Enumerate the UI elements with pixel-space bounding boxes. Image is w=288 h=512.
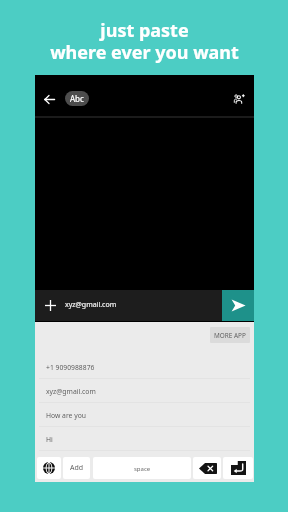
button[interactable]: Language <box>37 457 61 479</box>
button[interactable]: Add attachment <box>41 296 59 314</box>
staticText: Abc <box>70 93 84 104</box>
button[interactable]: Send <box>222 290 254 321</box>
button[interactable]: xyz@gmail.com <box>35 379 254 403</box>
staticText: xyz@gmail.com <box>65 300 117 310</box>
button[interactable]: Add <box>63 457 90 479</box>
staticText: MORE APP <box>214 331 246 340</box>
button[interactable]: Hi <box>35 427 254 451</box>
staticText: Add <box>70 463 84 473</box>
staticText: space <box>134 465 151 473</box>
button[interactable]: Abc <box>65 91 89 106</box>
button[interactable]: How are you <box>35 403 254 427</box>
button[interactable]: xyz@gmail.com <box>53 290 222 321</box>
staticText: +1 9090988876 <box>46 363 95 372</box>
button[interactable]: Add people <box>228 88 250 110</box>
staticText: How are you <box>46 411 86 420</box>
button[interactable]: +1 9090988876 <box>35 355 254 379</box>
staticText: Hi <box>46 435 53 444</box>
staticText: just paste where ever you want <box>50 18 239 65</box>
button[interactable]: MORE APP <box>210 327 250 343</box>
button[interactable]: space <box>93 457 191 479</box>
button[interactable]: Backspace <box>193 457 221 479</box>
button[interactable]: Enter <box>223 457 253 479</box>
button[interactable]: Back <box>39 89 60 110</box>
staticText: xyz@gmail.com <box>46 387 96 396</box>
